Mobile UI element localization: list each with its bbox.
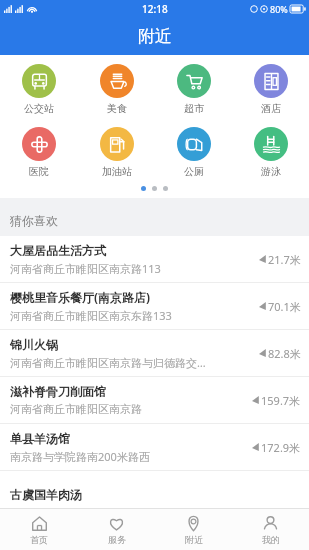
staticText: 美食 [107,102,127,115]
staticText: 12:18 [142,2,168,16]
staticText: 南京路与学院路南200米路西 [10,449,150,464]
button[interactable]: 樱桃里音乐餐厅(南京路店) [0,283,309,329]
staticText: 82.8米 [268,346,301,361]
staticText: 公厕 [184,165,204,178]
button[interactable]: 公厕 [155,125,232,180]
button[interactable]: 超市 [155,62,232,117]
staticText: 首页 [30,534,48,545]
button[interactable]: 锦川火锅 [0,330,309,376]
button[interactable]: 滋补脊骨刀削面馆 [0,377,309,423]
staticText: 单县羊汤馆 [10,431,70,446]
staticText: 河南省商丘市睢阳区南京东路133 [10,308,172,323]
staticText: 70.1米 [268,299,301,314]
staticText: 酒店 [261,102,281,115]
button[interactable]: 首页 [0,509,78,550]
staticText: 大屋居品生活方式 [10,243,106,258]
staticText: 河南省商丘市睢阳区南京路113 [10,261,161,276]
button[interactable]: 游泳 [232,125,309,180]
staticText: 159.7米 [261,393,301,408]
button[interactable]: 古虞国羊肉汤 [0,471,309,517]
button[interactable]: 美食 [78,62,155,117]
staticText: 医院 [29,165,49,178]
staticText: 猜你喜欢 [10,213,58,228]
button[interactable]: 服务 [78,509,155,550]
staticText: 附近 [185,534,203,545]
button[interactable]: 我的 [232,509,309,550]
staticText: 古虞国羊肉汤 [10,487,82,502]
staticText: 樱桃里音乐餐厅(南京路店) [10,289,151,305]
staticText: 河南省商丘市睢阳区南京路与归德路交… [10,355,206,370]
staticText: 服务 [108,534,126,545]
staticText: 172.9米 [261,440,301,455]
staticText: 河南省商丘市睢阳区南京路 [10,402,142,416]
staticText: 公交站 [24,102,54,115]
staticText: 80% [270,3,288,15]
staticText: 锦川火锅 [10,337,58,352]
button[interactable]: 公交站 [0,62,78,117]
staticText: 附近 [138,26,172,47]
button[interactable]: 酒店 [232,62,309,117]
button[interactable]: 附近 [155,509,232,550]
button[interactable]: 加油站 [78,125,155,180]
staticText: 滋补脊骨刀削面馆 [10,384,106,399]
staticText: 超市 [184,102,204,115]
staticText: 我的 [262,534,280,545]
button[interactable]: 医院 [0,125,78,180]
staticText: 加油站 [102,165,132,178]
button[interactable]: 大屋居品生活方式 [0,236,309,282]
staticText: 21.7米 [268,252,301,267]
button[interactable]: 单县羊汤馆 [0,424,309,470]
staticText: 游泳 [261,165,281,178]
